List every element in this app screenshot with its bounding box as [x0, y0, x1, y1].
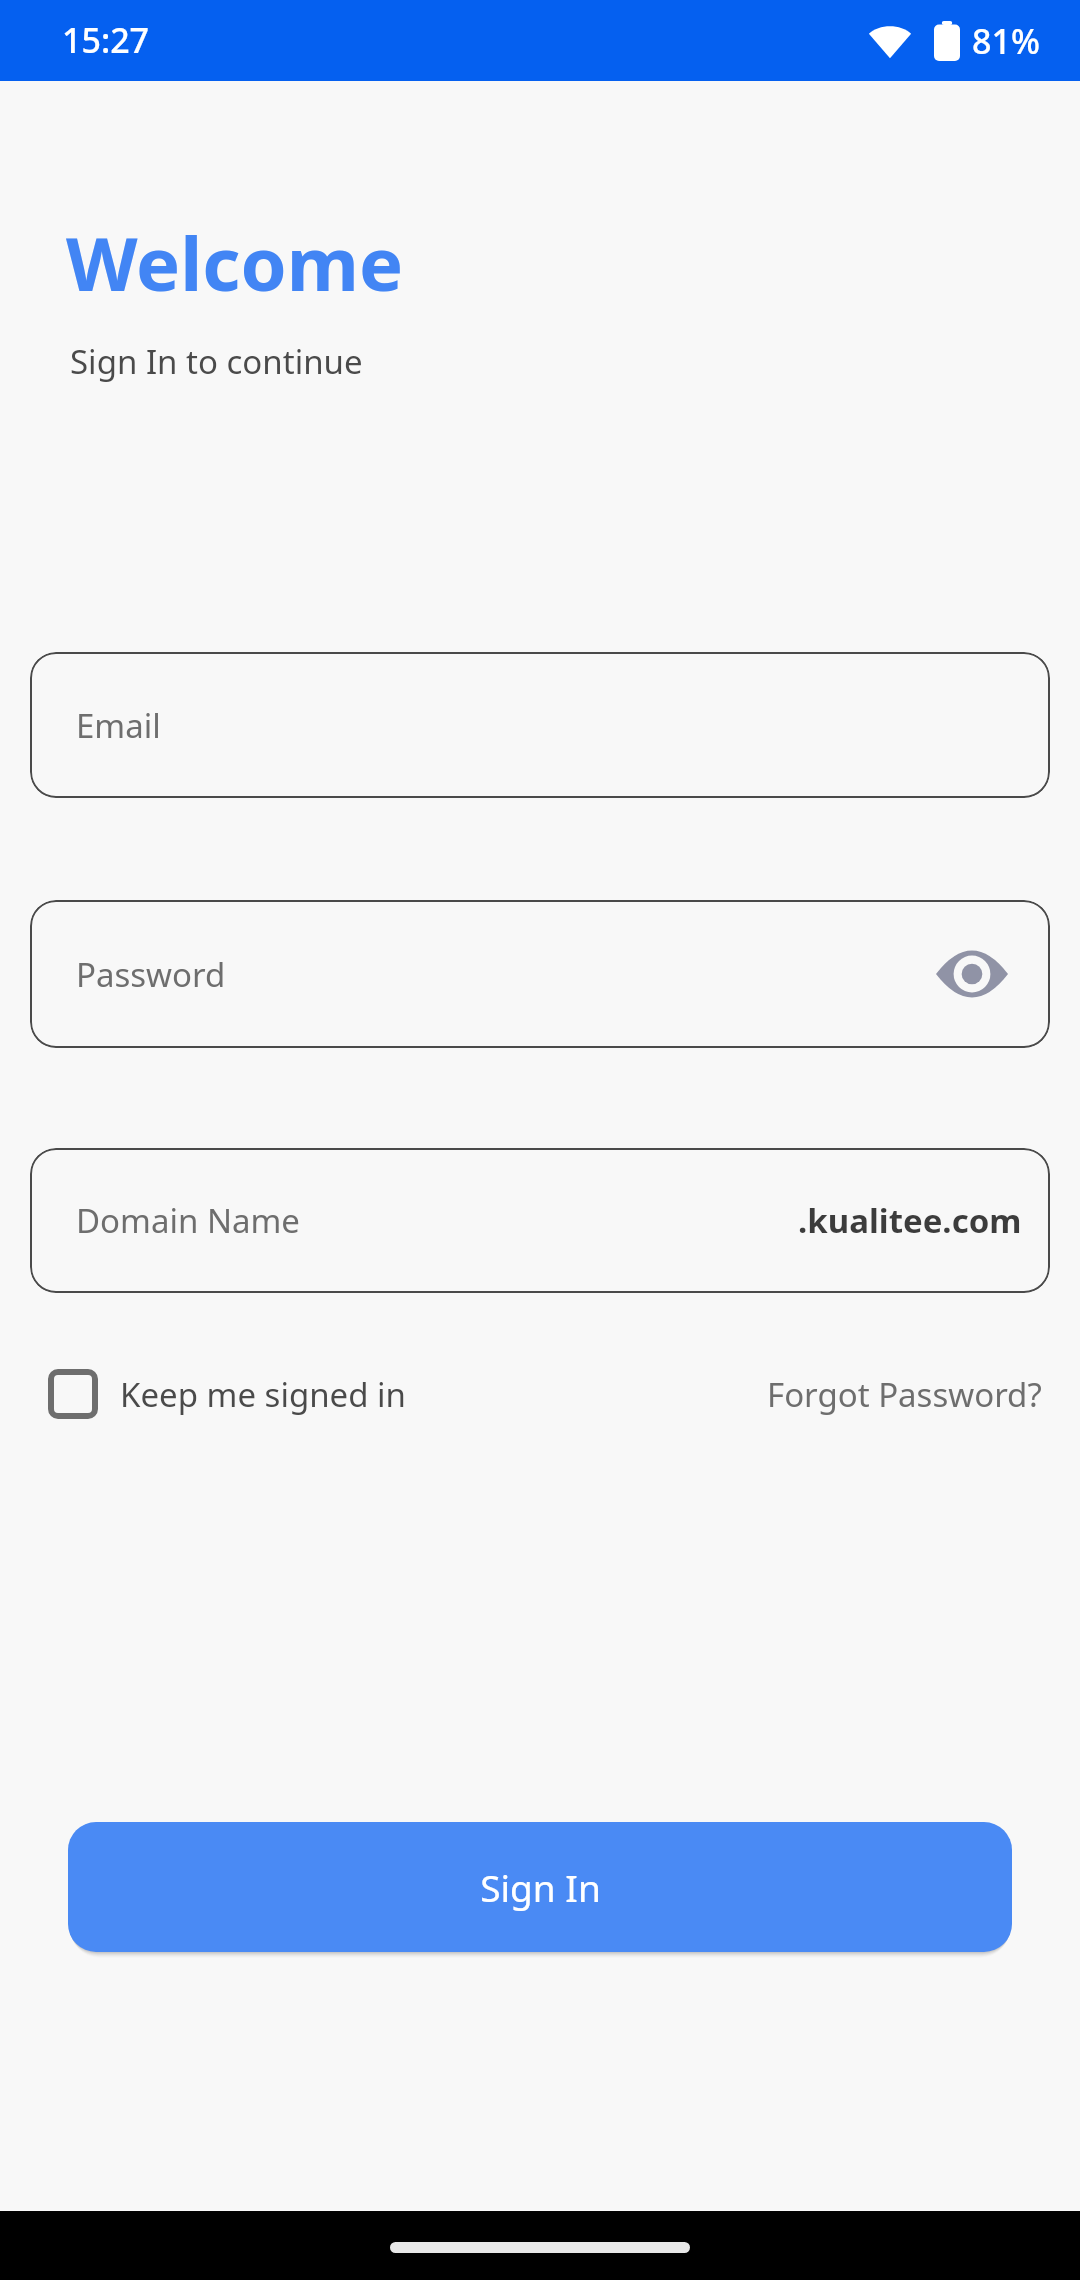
staticText: Email: [76, 703, 161, 748]
staticText: 15:27: [62, 17, 150, 63]
staticText: Sign In: [480, 1862, 601, 1912]
button[interactable]: Email: [30, 652, 1050, 798]
staticText: Forgot Password?: [767, 1372, 1042, 1417]
button[interactable]: Show password: [924, 926, 1020, 1022]
staticText: Keep me signed in: [120, 1372, 406, 1417]
staticText: .kualitee.com: [798, 1198, 1022, 1243]
button[interactable]: Forgot Password?: [759, 1362, 1050, 1427]
button[interactable]: Sign In: [68, 1822, 1012, 1952]
button[interactable]: Keep me signed in: [40, 1363, 414, 1425]
button[interactable]: Password: [30, 900, 1050, 1048]
staticText: Domain Name: [76, 1198, 300, 1243]
staticText: Sign In to continue: [70, 339, 363, 384]
button[interactable]: Domain Name: [30, 1148, 1050, 1293]
staticText: Password: [76, 952, 226, 997]
staticText: Welcome: [66, 212, 404, 313]
staticText: 81%: [972, 18, 1040, 64]
